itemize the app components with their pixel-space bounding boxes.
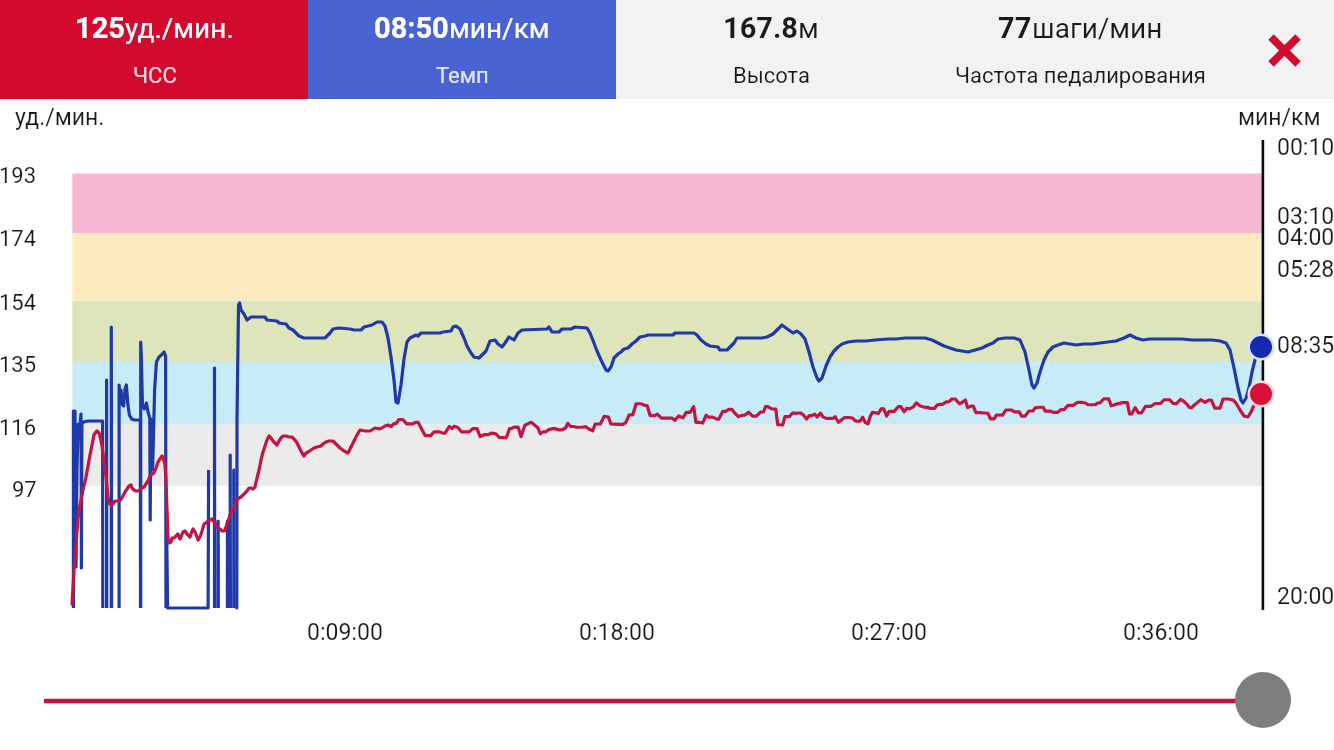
button[interactable]: 08:50 [308, 0, 616, 99]
staticText: 97 [12, 477, 37, 503]
staticText: 0:27:00 [851, 619, 927, 646]
staticText: 0:36:00 [1123, 619, 1199, 646]
staticText: 125 [75, 11, 125, 45]
staticText: 00:10 [1277, 134, 1334, 161]
button[interactable]: 77 [925, 0, 1236, 99]
staticText: 77 [998, 11, 1032, 45]
staticText: 135 [0, 352, 37, 378]
staticText: 03:10 [1277, 203, 1334, 230]
staticText: 05:28 [1277, 256, 1334, 283]
staticText: уд./мин. [15, 104, 105, 131]
staticText: 04:00 [1277, 224, 1334, 251]
staticText: 0:09:00 [307, 619, 383, 646]
staticText: м [798, 12, 819, 45]
staticText: 08:50 [374, 11, 449, 45]
staticText: Высота [733, 63, 810, 89]
staticText: шаги/мин [1032, 12, 1163, 45]
staticText: мин/км [1238, 104, 1321, 131]
staticText: Частота педалирования [955, 63, 1206, 89]
staticText: уд./мин. [125, 12, 234, 45]
staticText: 174 [0, 226, 37, 252]
staticText: 193 [0, 163, 37, 189]
button[interactable]: 125 [0, 0, 308, 99]
staticText: 0:18:00 [579, 619, 655, 646]
staticText: 116 [0, 415, 37, 441]
staticText: 20:00 [1277, 583, 1334, 610]
button[interactable]: Playback position [1235, 672, 1291, 728]
staticText: мин/км [449, 12, 550, 45]
button[interactable]: Close [1250, 16, 1318, 84]
staticText: ЧСС [133, 63, 177, 89]
staticText: Темп [436, 63, 489, 89]
button[interactable]: 167.8 [616, 0, 925, 99]
staticText: 167.8 [723, 11, 798, 45]
staticText: 08:35 [1277, 332, 1334, 359]
staticText: 154 [0, 290, 37, 316]
